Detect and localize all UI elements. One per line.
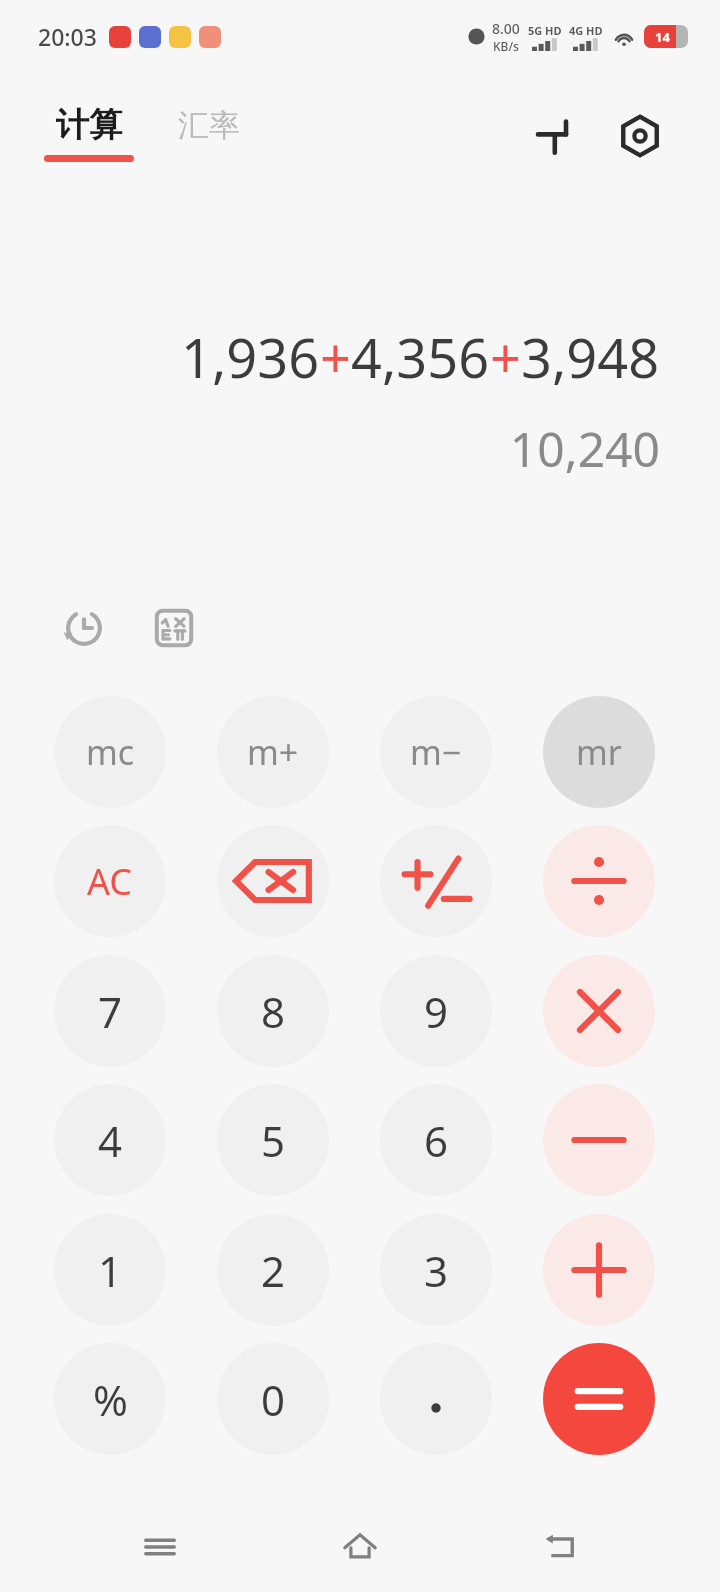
staticText: +	[490, 320, 521, 394]
button[interactable]: Equals	[543, 1343, 655, 1455]
staticText: +	[320, 320, 351, 394]
button[interactable]: Settings	[610, 106, 670, 166]
button[interactable]: 0	[217, 1343, 329, 1455]
staticText: %	[93, 1371, 128, 1428]
staticText: 5	[261, 1112, 286, 1169]
staticText: 计算	[56, 104, 122, 146]
staticText: 0	[261, 1371, 286, 1428]
button[interactable]: Divide	[543, 825, 655, 937]
button[interactable]: mc	[54, 696, 166, 808]
button[interactable]: 5	[217, 1084, 329, 1196]
button[interactable]: 3	[380, 1214, 492, 1326]
staticText: 14	[655, 28, 670, 46]
staticText: 1,936	[181, 320, 320, 394]
staticText: 4	[98, 1112, 123, 1169]
staticText: 3	[424, 1242, 449, 1299]
button[interactable]: Plus	[543, 1214, 655, 1326]
button[interactable]: Multiply	[543, 955, 655, 1067]
staticText: KB/s	[493, 38, 519, 54]
staticText: m−	[410, 729, 462, 775]
button[interactable]: 计算	[44, 104, 134, 162]
staticText: 5G HD	[528, 23, 562, 38]
button[interactable]: 4	[54, 1084, 166, 1196]
button[interactable]: Unit converter	[524, 106, 584, 166]
staticText: 10,240	[509, 416, 660, 481]
staticText: 8.00	[492, 19, 520, 38]
button[interactable]: 6	[380, 1084, 492, 1196]
button[interactable]: Decimal point	[380, 1343, 492, 1455]
button[interactable]: 汇率	[178, 104, 240, 145]
staticText: 1	[98, 1242, 123, 1299]
button[interactable]: Plus minus	[380, 825, 492, 937]
button[interactable]: 9	[380, 955, 492, 1067]
staticText: 2	[261, 1242, 286, 1299]
staticText: 9	[424, 983, 449, 1040]
staticText: mc	[86, 729, 135, 775]
button[interactable]: AC	[54, 825, 166, 937]
staticText: 4G HD	[569, 23, 603, 38]
button[interactable]: Home	[320, 1507, 400, 1587]
button[interactable]: 8	[217, 955, 329, 1067]
button[interactable]: Minus	[543, 1084, 655, 1196]
button[interactable]: m−	[380, 696, 492, 808]
staticText: 20:03	[38, 21, 97, 52]
button[interactable]: m+	[217, 696, 329, 808]
button[interactable]: Back	[520, 1507, 600, 1587]
button[interactable]: %	[54, 1343, 166, 1455]
button[interactable]: 1	[54, 1214, 166, 1326]
staticText: AC	[87, 857, 133, 906]
staticText: mr	[576, 729, 622, 775]
staticText: 汇率	[178, 106, 240, 145]
button[interactable]: 2	[217, 1214, 329, 1326]
staticText: 7	[98, 983, 123, 1040]
staticText: 8	[261, 983, 286, 1040]
staticText: 4,356	[351, 320, 490, 394]
staticText: m+	[247, 729, 299, 775]
button[interactable]: Backspace	[217, 825, 329, 937]
button[interactable]: 7	[54, 955, 166, 1067]
staticText: 6	[424, 1112, 449, 1169]
staticText: 3,948	[521, 320, 660, 394]
button[interactable]: History	[56, 600, 112, 656]
button[interactable]: Scientific mode	[146, 600, 202, 656]
button[interactable]: mr	[543, 696, 655, 808]
button[interactable]: Recent apps	[120, 1507, 200, 1587]
